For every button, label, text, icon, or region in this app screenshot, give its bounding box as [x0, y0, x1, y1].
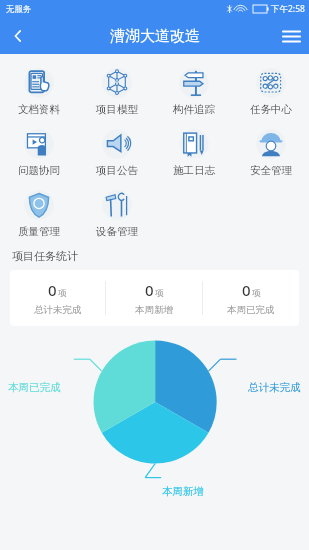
button[interactable]: Menu [273, 18, 309, 54]
button[interactable]: 问题协同 [0, 123, 78, 180]
button[interactable]: 安全管理 [232, 123, 309, 180]
staticText: 施工日志 [173, 164, 215, 177]
staticText: 0 [145, 280, 154, 300]
staticText: 0 [48, 280, 57, 300]
button[interactable]: 施工日志 [155, 123, 232, 180]
staticText: 0 [242, 280, 251, 300]
staticText: 项目模型 [96, 103, 138, 116]
staticText: 漕湖大道改造 [110, 27, 200, 46]
button[interactable]: 项目公告 [78, 123, 155, 180]
staticText: 本周新增 [162, 485, 204, 498]
staticText: 下午2:58 [271, 3, 305, 15]
staticText: 问题协同 [18, 164, 60, 177]
staticText: 项 [252, 288, 261, 299]
button[interactable]: Back [0, 18, 36, 54]
staticText: 无服务 [6, 4, 32, 15]
staticText: 总计未完成 [34, 304, 82, 316]
staticText: 任务中心 [250, 103, 292, 116]
button[interactable]: 0 [203, 280, 299, 316]
staticText: 项 [155, 288, 164, 299]
button[interactable]: 文档资料 [0, 62, 78, 119]
staticText: 质量管理 [18, 225, 60, 238]
button[interactable]: 任务中心 [232, 62, 309, 119]
button[interactable]: 设备管理 [78, 184, 155, 241]
staticText: 设备管理 [96, 225, 138, 238]
staticText: 文档资料 [18, 103, 60, 116]
button[interactable]: 构件追踪 [155, 62, 232, 119]
button[interactable]: 0 [106, 280, 202, 316]
staticText: 构件追踪 [173, 103, 215, 116]
staticText: 项 [58, 288, 67, 299]
button[interactable]: 0 [10, 280, 105, 316]
staticText: 本周已完成 [8, 381, 61, 394]
button[interactable]: 质量管理 [0, 184, 78, 241]
staticText: 项目公告 [96, 164, 138, 177]
staticText: 总计未完成 [248, 381, 301, 394]
staticText: 项目任务统计 [12, 249, 78, 263]
staticText: 本周已完成 [227, 304, 275, 316]
button[interactable]: 项目模型 [78, 62, 155, 119]
staticText: 安全管理 [250, 164, 292, 177]
staticText: 本周新增 [135, 304, 173, 316]
